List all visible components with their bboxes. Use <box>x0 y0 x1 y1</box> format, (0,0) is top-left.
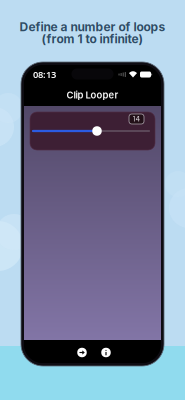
staticText: Define a number of loops <box>19 20 165 34</box>
button[interactable]: Information <box>94 344 118 361</box>
button[interactable]: Loop playback <box>70 344 94 361</box>
staticText: 08:13 <box>33 68 56 81</box>
staticText: 14 <box>132 115 140 123</box>
staticText: (from 1 to infinite) <box>41 32 143 46</box>
staticText: Clip Looper <box>66 89 118 101</box>
button[interactable]: 14 <box>129 114 144 124</box>
